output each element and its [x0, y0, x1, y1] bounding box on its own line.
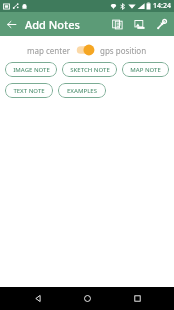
button[interactable]: Images [128, 13, 150, 35]
button[interactable]: IMAGE NOTE [5, 62, 57, 77]
button[interactable]: TEXT NOTE [5, 83, 53, 98]
button[interactable]: Toggle map center or gps position [76, 43, 95, 57]
staticText: EXAMPLES [67, 87, 97, 95]
button[interactable]: Settings [150, 13, 172, 35]
button[interactable]: Back [26, 287, 50, 310]
staticText: gps position [100, 45, 147, 56]
button[interactable]: SKETCH NOTE [62, 62, 117, 77]
button[interactable]: Home [75, 287, 99, 310]
staticText: Add Notes [25, 17, 80, 32]
staticText: IMAGE NOTE [13, 66, 50, 74]
button[interactable]: MAP NOTE [122, 62, 169, 77]
staticText: TEXT NOTE [13, 87, 45, 95]
button[interactable]: Recent apps [125, 287, 149, 310]
staticText: 14:24 [153, 1, 171, 11]
staticText: MAP NOTE [130, 66, 161, 74]
button[interactable]: EXAMPLES [58, 83, 106, 98]
button[interactable]: Notes list [106, 13, 128, 35]
staticText: SKETCH NOTE [70, 66, 110, 74]
button[interactable]: Back [0, 13, 22, 35]
staticText: map center [27, 45, 70, 56]
